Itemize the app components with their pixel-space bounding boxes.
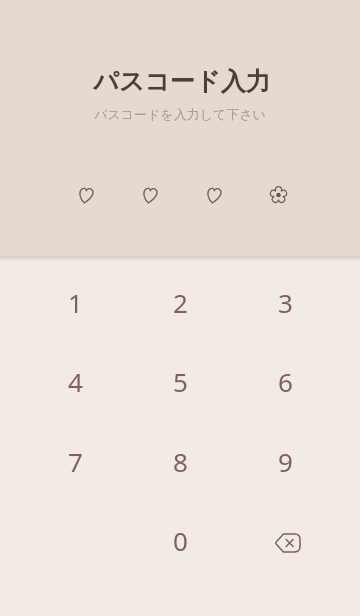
button[interactable]: 0 bbox=[128, 510, 233, 570]
staticText: パスコードを入力して下さい bbox=[94, 106, 266, 122]
staticText: 7 bbox=[68, 444, 83, 479]
staticText: 2 bbox=[173, 285, 188, 320]
button[interactable]: 2 bbox=[128, 272, 233, 332]
staticText: 9 bbox=[278, 444, 293, 479]
button[interactable]: 4 bbox=[22, 351, 128, 411]
staticText: 0 bbox=[173, 523, 188, 558]
button[interactable]: Delete bbox=[233, 510, 338, 570]
staticText: 1 bbox=[68, 285, 83, 320]
button[interactable]: 8 bbox=[128, 431, 233, 491]
button[interactable]: 6 bbox=[233, 351, 338, 411]
staticText: 5 bbox=[173, 364, 188, 399]
staticText: 4 bbox=[68, 364, 83, 399]
button[interactable]: 1 bbox=[22, 272, 128, 332]
staticText: 3 bbox=[278, 285, 293, 320]
button[interactable]: 9 bbox=[233, 431, 338, 491]
staticText: パスコード入力 bbox=[93, 66, 271, 97]
button[interactable]: 3 bbox=[233, 272, 338, 332]
button[interactable]: 7 bbox=[22, 431, 128, 491]
staticText: 8 bbox=[173, 444, 188, 479]
staticText: 6 bbox=[278, 364, 293, 399]
button[interactable]: 5 bbox=[128, 351, 233, 411]
